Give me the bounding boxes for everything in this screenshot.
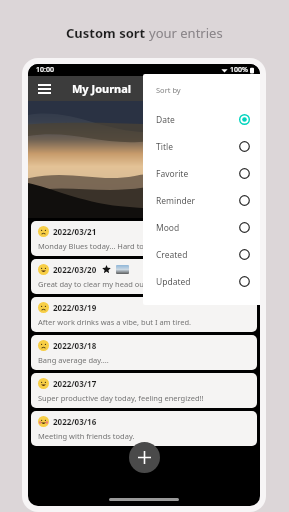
button[interactable]: 2022/03/21 xyxy=(31,221,257,256)
staticText: Created xyxy=(156,249,239,261)
button[interactable]: Favorite xyxy=(156,160,250,187)
button[interactable]: Updated xyxy=(156,268,250,295)
staticText: Sort by xyxy=(156,85,181,95)
staticText: 2022/03/18 xyxy=(53,340,97,351)
staticText: Custom sort xyxy=(66,24,149,42)
staticText: Updated xyxy=(156,276,239,288)
button[interactable]: Mood xyxy=(156,214,250,241)
staticText: Monday Blues today... Hard to focus. xyxy=(38,241,167,251)
button[interactable]: 2022/03/17 xyxy=(31,373,257,408)
staticText: 2022/03/21 xyxy=(53,226,97,237)
button[interactable]: Open navigation menu xyxy=(35,80,53,98)
button[interactable]: 2022/03/19 xyxy=(31,297,257,332)
staticText: Date xyxy=(156,114,239,126)
staticText: Meeting with friends today. xyxy=(38,431,135,441)
staticText: Bang average day.... xyxy=(38,355,109,365)
staticText: After work drinks was a vibe, but I am t… xyxy=(38,317,192,327)
staticText: 2022/03/20 xyxy=(53,264,97,275)
button[interactable]: Date xyxy=(156,106,250,133)
button[interactable]: Add entry xyxy=(129,442,160,473)
button[interactable]: 2022/03/16 xyxy=(31,411,257,446)
staticText: 2022/03/17 xyxy=(53,378,97,389)
staticText: Reminder xyxy=(156,195,239,207)
button[interactable]: 2022/03/18 xyxy=(31,335,257,370)
button[interactable]: Title xyxy=(156,133,250,160)
staticText: 100% xyxy=(230,65,248,75)
staticText: My Journal xyxy=(72,81,132,96)
staticText: your entries xyxy=(149,24,223,42)
button[interactable]: Created xyxy=(156,241,250,268)
staticText: Mood xyxy=(156,222,239,234)
staticText: Favorite xyxy=(156,168,239,180)
staticText: Title xyxy=(156,141,239,153)
button[interactable]: Reminder xyxy=(156,187,250,214)
button[interactable]: 2022/03/20 xyxy=(31,259,257,294)
staticText: 10:00 xyxy=(36,65,54,75)
staticText: Super productive day today, feeling ener… xyxy=(38,393,204,403)
staticText: Great day to clear my head outside. xyxy=(38,279,163,289)
staticText: 2022/03/19 xyxy=(53,302,97,313)
staticText: 2022/03/16 xyxy=(53,416,97,427)
